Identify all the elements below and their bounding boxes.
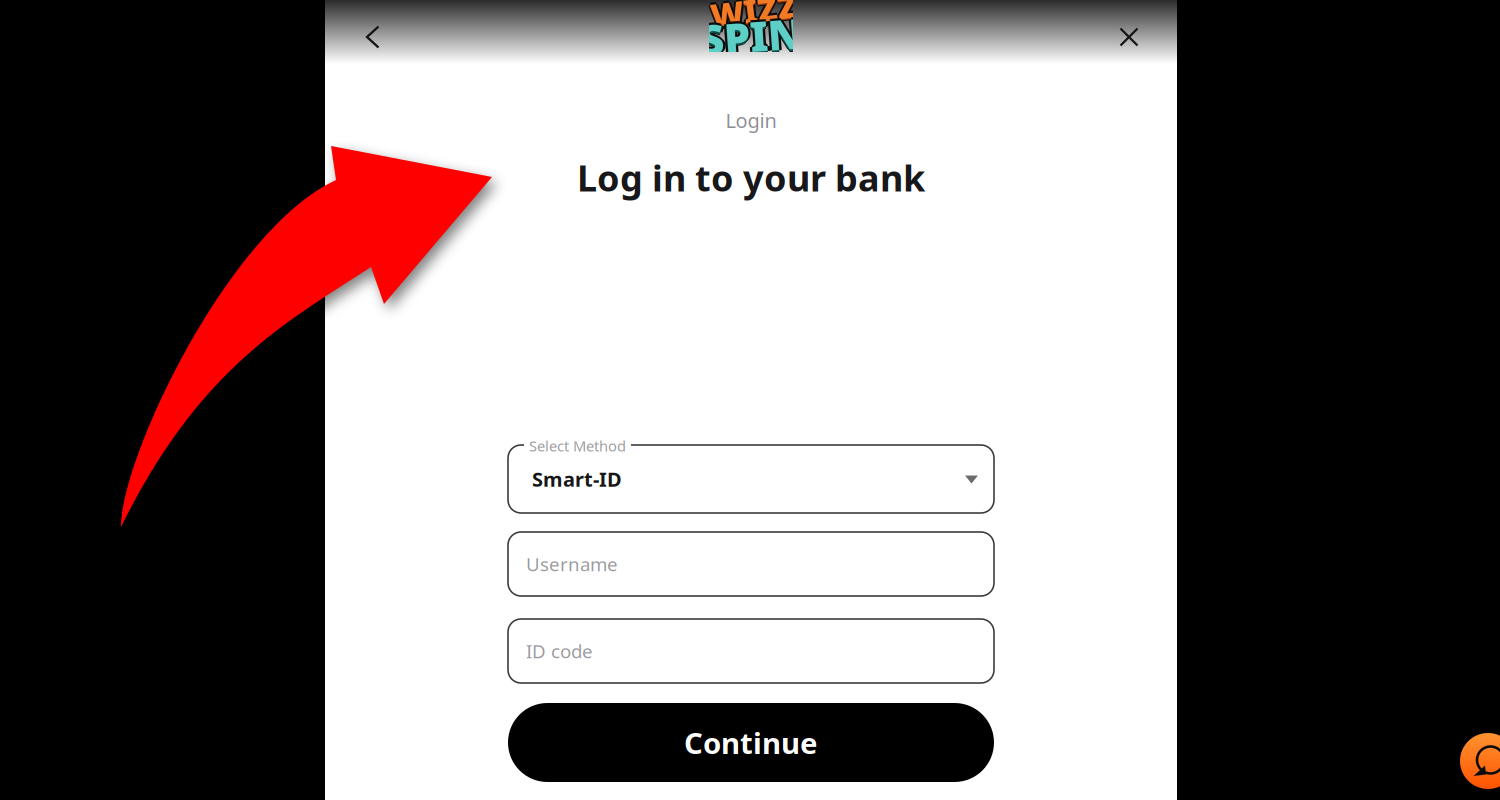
button[interactable]: Back bbox=[351, 15, 395, 59]
staticText: WIZZ bbox=[710, 0, 797, 34]
staticText: WIZZ bbox=[710, 0, 797, 29]
staticText: Continue bbox=[684, 723, 818, 762]
staticText: WIZZ bbox=[710, 0, 797, 31]
button[interactable]: Continue bbox=[508, 703, 994, 782]
staticText: SPIN bbox=[698, 9, 800, 63]
staticText: Login bbox=[725, 107, 776, 134]
staticText: SPIN bbox=[700, 9, 802, 63]
staticText: ID code bbox=[526, 639, 593, 663]
button[interactable]: Username bbox=[508, 532, 994, 596]
staticText: SPIN bbox=[700, 11, 802, 65]
button[interactable]: Chat support bbox=[1460, 733, 1500, 789]
staticText: WIZZ bbox=[710, 0, 797, 33]
staticText: SPIN bbox=[700, 6, 802, 61]
staticText: SPIN bbox=[700, 11, 802, 66]
staticText: WIZZ bbox=[708, 0, 795, 31]
staticText: WIZZ bbox=[713, 0, 800, 31]
button[interactable]: Smart-ID bbox=[508, 445, 994, 513]
staticText: SPIN bbox=[702, 9, 804, 63]
staticText: Smart-ID bbox=[532, 466, 622, 492]
staticText: Select Method bbox=[529, 436, 626, 455]
button[interactable]: ID code bbox=[508, 619, 994, 683]
staticText: Log in to your bank bbox=[577, 154, 925, 201]
button[interactable]: Close bbox=[1107, 15, 1151, 59]
staticText: Username bbox=[526, 552, 618, 576]
